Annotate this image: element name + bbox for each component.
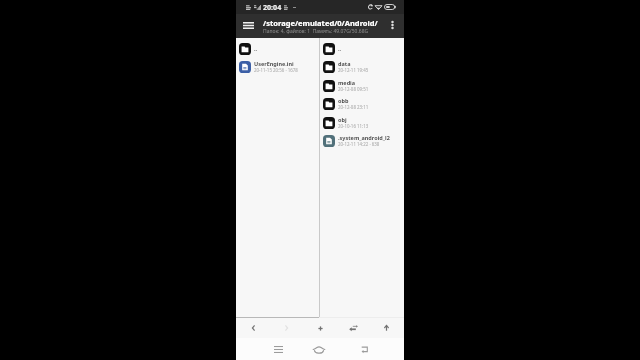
staticText: /storage/emulated/0/Android/	[263, 18, 378, 28]
button[interactable]: Recents	[266, 338, 290, 360]
button[interactable]: Transfer	[340, 318, 366, 338]
staticText: 20-12-08 09:51	[338, 86, 369, 92]
button[interactable]: Back	[352, 338, 376, 360]
staticText: 20-12-08 23:11	[338, 104, 369, 110]
staticText: media	[338, 79, 356, 86]
button[interactable]: More options	[379, 14, 404, 38]
staticText: 20-10-16 11:13	[338, 123, 369, 129]
button[interactable]: obb	[320, 94, 404, 113]
staticText: ..	[338, 45, 342, 52]
button[interactable]: Up	[373, 318, 399, 338]
button[interactable]: media	[320, 76, 404, 95]
button[interactable]: data	[320, 57, 404, 76]
button[interactable]: New	[307, 318, 333, 338]
button[interactable]: UserEngine.ini	[236, 57, 319, 76]
button[interactable]: .system_android_l2	[320, 131, 404, 150]
staticText: obj	[338, 116, 347, 123]
staticText: obb	[338, 97, 349, 104]
staticText: 20-11-15 20:56 · 1678	[254, 67, 298, 73]
button[interactable]: Menu	[236, 14, 261, 38]
staticText: .system_android_l2	[338, 134, 390, 141]
button[interactable]: Back	[240, 318, 266, 338]
button[interactable]: ..	[236, 39, 319, 58]
button[interactable]: Home	[307, 338, 331, 360]
staticText: 20-12-11 14:22 · 638	[338, 141, 380, 147]
button[interactable]: obj	[320, 113, 404, 132]
staticText: Папок: 4, файлов: 1 Память: 49.07G/50.68…	[263, 28, 369, 35]
staticText: data	[338, 60, 351, 67]
staticText: 20-12-11 19:45	[338, 67, 369, 73]
staticText: UserEngine.ini	[254, 60, 294, 67]
staticText: 20:04	[263, 2, 282, 12]
staticText: ..	[254, 45, 258, 52]
button[interactable]: ..	[320, 39, 404, 58]
